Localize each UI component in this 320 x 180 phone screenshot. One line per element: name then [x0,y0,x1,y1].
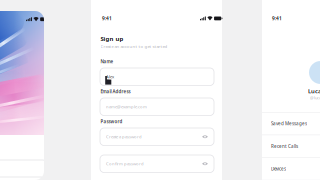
staticText: Create an account to get started [100,43,167,49]
staticText: Confirm password [106,161,144,166]
button[interactable]: Confirm password [100,155,214,172]
staticText: Saved Messages [271,120,307,127]
button[interactable]: Create a password [100,128,214,145]
staticText: Create a password [106,134,142,139]
staticText: name@example.com [106,104,147,109]
button[interactable]: name@example.com [100,98,214,115]
staticText: Sign up [100,34,123,43]
button[interactable]: Saved Messages [262,113,320,135]
staticText: 9:41 [272,15,282,21]
staticText: @lucas [310,95,320,100]
staticText: Lucas [308,87,320,95]
staticText: Alex [106,74,114,79]
button[interactable]: Devices [262,158,320,180]
button[interactable]: Alex [100,68,214,85]
staticText: Name [100,58,113,64]
button[interactable]: Recent Calls [262,135,320,158]
staticText: Password [100,118,122,124]
staticText: 9:41 [102,15,112,21]
staticText: Devices [271,166,286,172]
staticText: Recent Calls [271,143,298,149]
staticText: Email Address [100,88,130,94]
